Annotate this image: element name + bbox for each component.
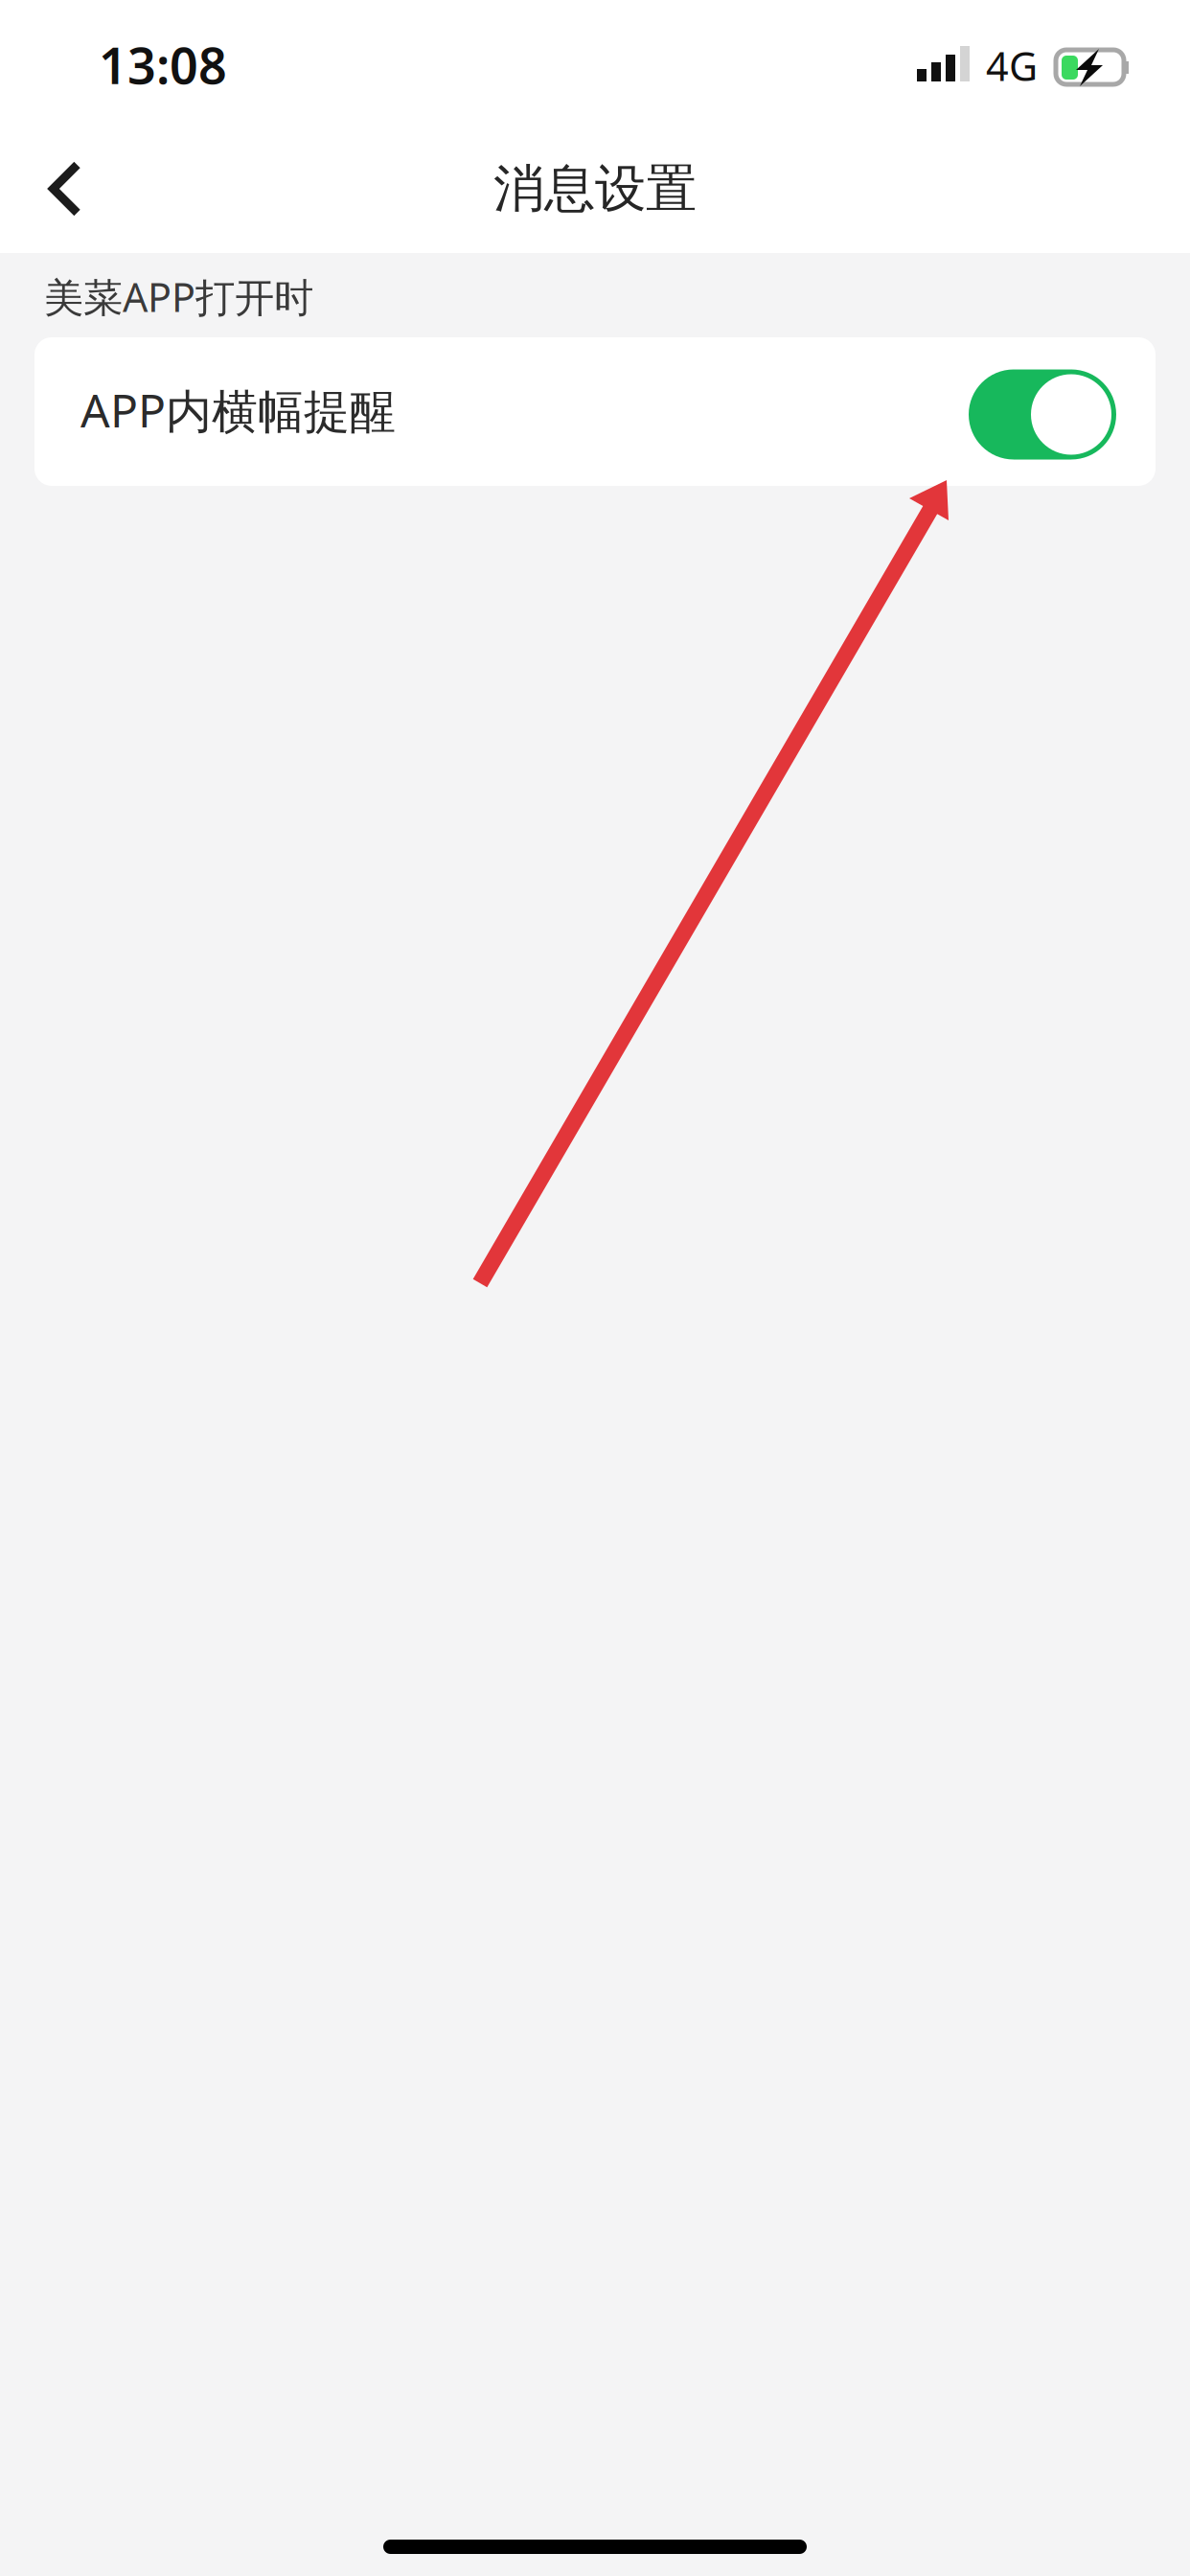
button[interactable]: Back <box>9 132 122 245</box>
staticText: 美菜APP打开时 <box>44 270 313 323</box>
button[interactable]: APP内横幅提醒 <box>34 337 1156 486</box>
staticText: 消息设置 <box>493 157 697 220</box>
staticText: 4G <box>986 39 1038 92</box>
button[interactable]: APP内横幅提醒, on <box>969 367 1116 457</box>
staticText: 13:08 <box>99 32 227 98</box>
staticText: APP内横幅提醒 <box>80 379 396 440</box>
